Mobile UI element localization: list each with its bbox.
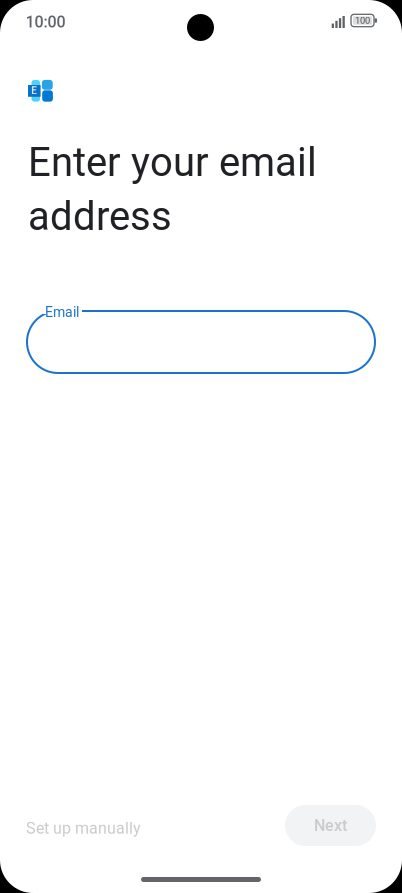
staticText: Email <box>45 304 79 320</box>
staticText: Set up manually <box>26 819 141 838</box>
staticText: Next <box>314 816 347 835</box>
button[interactable]: Next <box>285 805 376 846</box>
staticText: 10:00 <box>25 13 65 31</box>
staticText: Enter your email <box>28 139 317 186</box>
staticText: address <box>28 193 172 240</box>
button[interactable]: Set up manually <box>26 819 141 838</box>
button[interactable]: Email <box>27 311 375 373</box>
staticText: E <box>31 85 37 97</box>
staticText: 100 <box>355 15 370 26</box>
